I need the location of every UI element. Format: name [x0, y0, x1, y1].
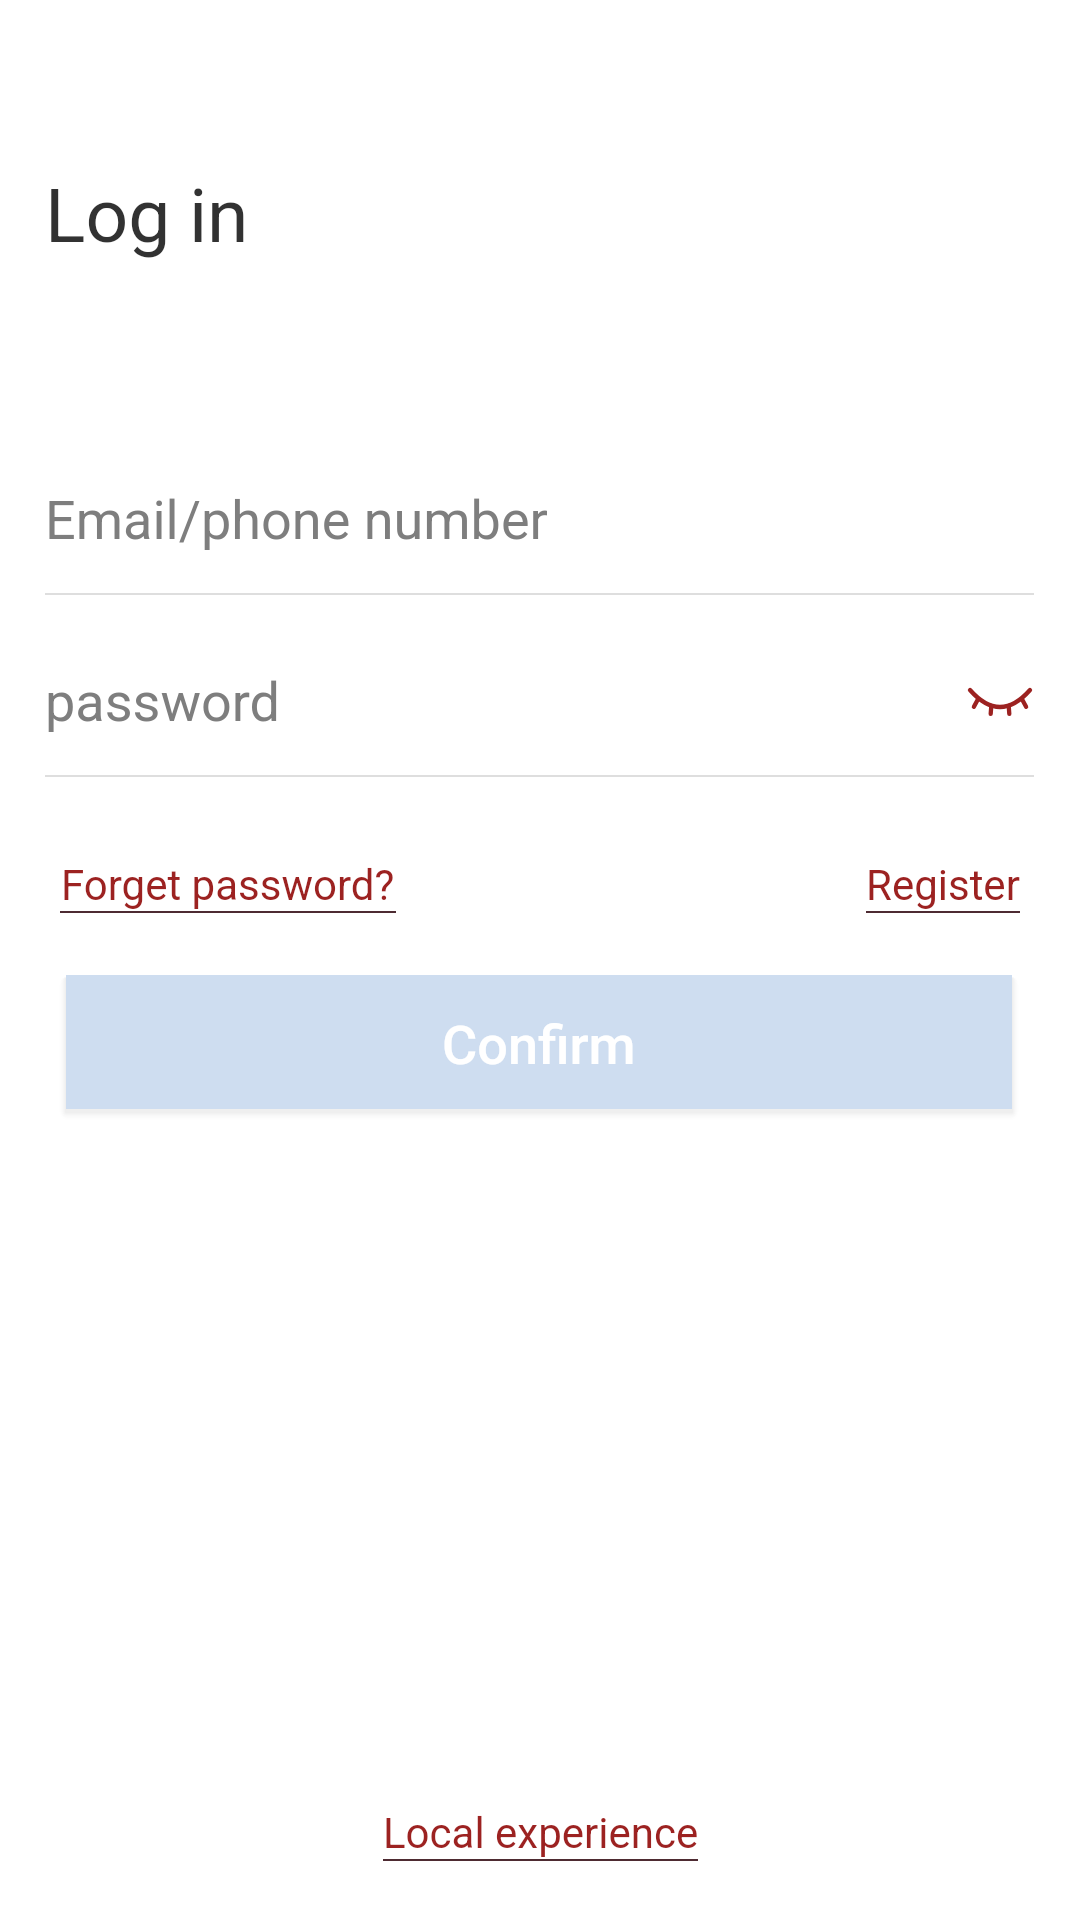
button[interactable]: Local experience — [383, 1804, 698, 1866]
button[interactable]: Register — [866, 856, 1020, 918]
button[interactable]: Confirm — [66, 975, 1012, 1109]
staticText: Email/phone number — [45, 489, 548, 552]
staticText: Log in — [45, 172, 249, 260]
staticText: Local experience — [383, 1809, 698, 1858]
button[interactable]: Email/phone number — [0, 489, 1080, 601]
button[interactable]: password — [0, 671, 1080, 783]
button[interactable]: Forget password? — [60, 856, 396, 918]
staticText: Forget password? — [61, 861, 397, 910]
button[interactable]: Show password — [939, 646, 1059, 766]
staticText: Confirm — [442, 1014, 636, 1077]
staticText: Register — [866, 861, 1020, 910]
staticText: password — [45, 671, 281, 734]
